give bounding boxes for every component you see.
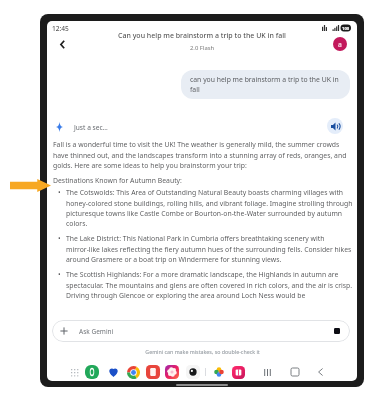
button[interactable]: can you help me brainstorm a trip to the… — [181, 70, 350, 99]
staticText: • — [58, 270, 61, 279]
button[interactable]: Back — [52, 34, 72, 54]
staticText: The Cotswolds: This Area of Outstanding … — [66, 188, 355, 228]
button[interactable]: Back — [312, 364, 328, 380]
staticText: can you help me brainstorm a trip to the… — [190, 75, 341, 94]
button[interactable]: Stop — [330, 324, 344, 338]
button[interactable]: Account — [333, 37, 347, 51]
button[interactable]: Phone — [84, 364, 100, 380]
button[interactable]: Google Photos — [211, 364, 227, 380]
button[interactable]: Keep — [145, 364, 161, 380]
staticText: 100 — [342, 26, 350, 32]
staticText: Just a sec... — [74, 123, 108, 132]
button[interactable]: Snapchat — [230, 364, 246, 380]
button[interactable]: All apps — [66, 364, 82, 380]
button[interactable]: Ask Gemini — [52, 320, 350, 342]
button[interactable]: Recents — [259, 364, 275, 380]
staticText: The Scottish Highlands: For a more drama… — [66, 270, 355, 300]
staticText: 2.0 Flash — [190, 44, 215, 52]
button[interactable]: Home — [287, 364, 303, 380]
button[interactable]: Photos — [164, 364, 180, 380]
button[interactable]: Camera — [185, 364, 201, 380]
staticText: 12:45 — [52, 24, 69, 33]
staticText: • — [58, 234, 61, 243]
button[interactable]: Chrome — [125, 364, 141, 380]
staticText: Gemini can make mistakes, so double-chec… — [145, 348, 260, 355]
staticText: Fall is a wonderful time to visit the UK… — [53, 140, 349, 170]
staticText: Ask Gemini — [79, 327, 114, 336]
staticText: Can you help me brainstorm a trip to the… — [118, 31, 286, 41]
staticText: a — [338, 40, 342, 49]
staticText: • — [58, 188, 61, 197]
button[interactable]: Listen — [327, 118, 343, 134]
button[interactable]: Messages — [105, 364, 121, 380]
staticText: Destinations Known for Autumn Beauty: — [53, 176, 182, 185]
staticText: The Lake District: This National Park in… — [66, 234, 355, 264]
